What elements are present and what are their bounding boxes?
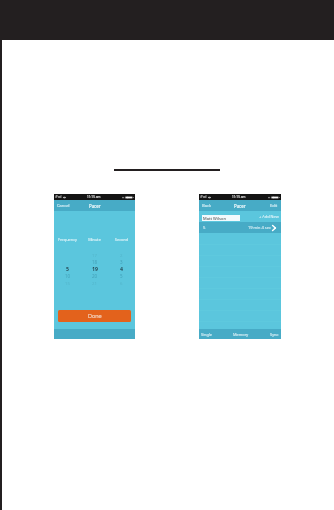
button[interactable]: Matt Wilson	[199, 211, 281, 222]
button[interactable]: Sync	[254, 329, 281, 339]
staticText: Cancel	[57, 203, 70, 209]
staticText: Second	[108, 237, 135, 242]
staticText: 11:15 am	[87, 195, 101, 199]
staticText: + Add New	[259, 214, 279, 219]
staticText: Memory	[233, 332, 249, 337]
button[interactable]: Single	[199, 329, 227, 339]
staticText: Frequency	[54, 237, 81, 242]
staticText: iPod	[200, 195, 207, 199]
staticText: Sync	[270, 332, 279, 337]
staticText: iPod	[55, 195, 62, 199]
staticText: 5	[66, 265, 69, 272]
staticText: 2	[120, 252, 123, 258]
staticText: 19	[92, 265, 98, 272]
button[interactable]: Back	[199, 201, 214, 211]
staticText: 5	[120, 273, 123, 279]
staticText: 4	[120, 265, 123, 272]
staticText: 3	[120, 259, 123, 265]
button[interactable]: 5	[199, 222, 281, 233]
staticText: 18	[92, 259, 98, 265]
staticText: Matt Wilson	[203, 216, 226, 221]
button[interactable]: Done	[58, 310, 131, 322]
staticText: Back	[202, 203, 211, 209]
staticText: Minute	[81, 237, 108, 242]
staticText: 20	[92, 273, 98, 279]
staticText: 19 min 4 sec	[248, 225, 271, 230]
staticText: 15	[65, 280, 70, 286]
staticText: Pacer	[234, 203, 246, 209]
button[interactable]: Cancel	[54, 201, 73, 211]
staticText: 17	[92, 252, 97, 258]
staticText: 10	[65, 273, 71, 279]
staticText: Done	[88, 312, 102, 320]
staticText: Single	[201, 332, 213, 337]
button[interactable]: Edit	[267, 201, 281, 211]
staticText: 21	[92, 280, 97, 286]
button[interactable]: Memory	[227, 329, 254, 339]
staticText: 11:15 am	[232, 195, 246, 199]
staticText: Pacer	[89, 203, 101, 209]
staticText: Edit	[270, 203, 278, 209]
staticText: 6	[120, 280, 123, 286]
staticText: 5	[203, 225, 206, 231]
